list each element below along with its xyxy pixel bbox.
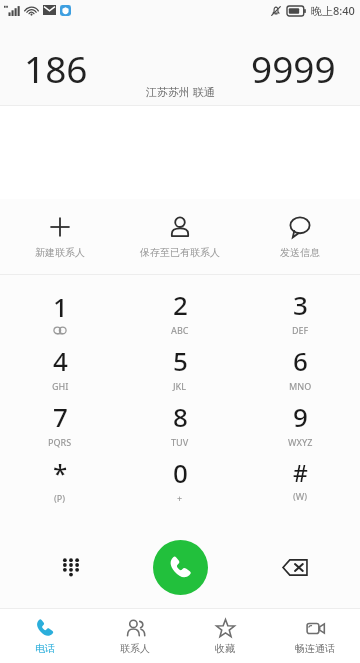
staticText: 0: [173, 455, 188, 490]
button[interactable]: 1: [0, 285, 120, 334]
staticText: 8: [173, 399, 188, 434]
button[interactable]: Hide keypad: [50, 546, 92, 588]
staticText: 电话: [35, 642, 55, 655]
button[interactable]: 0: [120, 451, 240, 504]
staticText: 新建联系人: [35, 246, 85, 259]
staticText: #: [293, 457, 308, 488]
staticText: DEF: [292, 324, 309, 336]
staticText: 畅连通话: [295, 642, 335, 655]
staticText: PQRS: [48, 436, 72, 448]
staticText: TUV: [171, 436, 189, 448]
staticText: 186: [24, 43, 88, 93]
staticText: 江苏苏州 联通: [146, 84, 215, 99]
button[interactable]: 5: [120, 339, 240, 392]
button[interactable]: Call: [153, 540, 208, 595]
button[interactable]: 8: [120, 395, 240, 448]
staticText: 7: [53, 399, 68, 434]
staticText: *: [53, 455, 68, 490]
staticText: 4: [53, 343, 68, 378]
button[interactable]: 保存至已有联系人: [120, 207, 240, 267]
button[interactable]: 6: [240, 339, 360, 392]
staticText: 收藏: [215, 642, 235, 655]
button[interactable]: 新建联系人: [0, 207, 120, 267]
button[interactable]: *: [0, 451, 120, 504]
button[interactable]: 7: [0, 395, 120, 448]
staticText: 2: [173, 287, 188, 322]
staticText: WXYZ: [288, 436, 313, 448]
staticText: 1: [53, 289, 68, 324]
staticText: 晚上8:40: [311, 3, 355, 18]
staticText: +: [177, 492, 183, 504]
staticText: 保存至已有联系人: [140, 246, 220, 259]
staticText: 5: [173, 343, 188, 378]
staticText: (W): [293, 490, 308, 502]
staticText: GHI: [52, 380, 69, 392]
staticText: JKL: [173, 380, 187, 392]
staticText: 3: [293, 287, 308, 322]
button[interactable]: 发送信息: [240, 207, 360, 267]
staticText: 9: [293, 399, 308, 434]
button[interactable]: 2: [120, 283, 240, 336]
button[interactable]: #: [240, 453, 360, 502]
button[interactable]: Delete: [274, 546, 316, 588]
button[interactable]: 畅连通话: [270, 612, 360, 660]
staticText: 9999: [251, 43, 336, 93]
staticText: 6: [293, 343, 308, 378]
button[interactable]: 9: [240, 395, 360, 448]
button[interactable]: 收藏: [180, 612, 270, 660]
button[interactable]: 3: [240, 283, 360, 336]
button[interactable]: 联系人: [90, 612, 180, 660]
button[interactable]: 电话: [0, 612, 90, 660]
staticText: ABC: [171, 324, 189, 336]
button[interactable]: 4: [0, 339, 120, 392]
staticText: 发送信息: [280, 246, 320, 259]
staticText: MNO: [289, 380, 312, 392]
staticText: 联系人: [120, 642, 150, 655]
staticText: (P): [54, 492, 66, 504]
